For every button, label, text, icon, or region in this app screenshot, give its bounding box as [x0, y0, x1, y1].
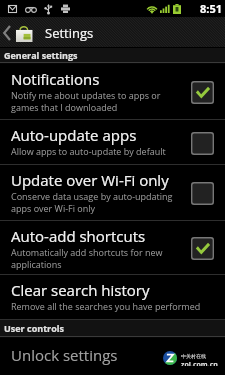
button[interactable]: Clear search history	[0, 275, 225, 319]
button[interactable]: Auto-add shortcuts	[0, 221, 225, 274]
staticText: Clear search history	[11, 280, 150, 300]
staticText: Automatically add shortcuts for new appl…	[11, 246, 163, 271]
staticText: Notify me about updates to apps or games…	[11, 89, 161, 114]
staticText: Notifications	[11, 69, 100, 89]
staticText: Allow apps to auto-update by default	[11, 145, 166, 157]
button[interactable]: Back	[0, 17, 14, 48]
staticText: General settings	[4, 49, 78, 61]
staticText: Update over Wi-Fi only	[11, 170, 169, 190]
button[interactable]: Update over Wi-Fi only	[0, 165, 225, 220]
staticText: 8:51	[200, 1, 223, 16]
staticText: Auto-update apps	[11, 125, 137, 145]
staticText: Settings	[45, 24, 94, 42]
staticText: 中关村在线	[181, 353, 206, 359]
staticText: Unlock settings	[11, 345, 118, 365]
staticText: Remove all the searches you have perform…	[11, 300, 201, 312]
staticText: Conserve data usage by auto-updating app…	[11, 190, 173, 215]
staticText: User controls	[4, 322, 64, 334]
staticText: zol.com.cn	[181, 360, 218, 366]
button[interactable]: Notifications	[0, 64, 225, 119]
button[interactable]: Google Play	[14, 22, 34, 44]
staticText: Auto-add shortcuts	[11, 226, 146, 246]
button[interactable]: Unlock settings	[0, 338, 225, 375]
button[interactable]: Auto-update apps	[0, 120, 225, 164]
